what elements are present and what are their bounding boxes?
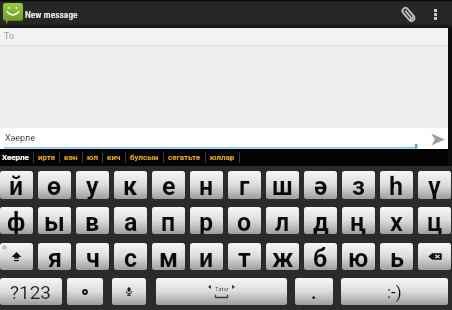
staticText: к	[123, 172, 138, 199]
button[interactable]: з	[342, 171, 375, 199]
staticText: е	[162, 172, 176, 199]
button[interactable]: ш	[266, 171, 299, 199]
button[interactable]: кич	[103, 149, 125, 166]
staticText: һ	[389, 172, 404, 199]
staticText: сәгатьтә	[168, 153, 201, 162]
staticText: кич	[107, 153, 121, 162]
button[interactable]: в	[76, 207, 109, 234]
staticText: Хәерле	[2, 153, 29, 162]
staticText: Хәерле	[5, 133, 36, 144]
button[interactable]: б	[304, 243, 337, 270]
staticText: ь	[390, 244, 404, 270]
staticText: ?123	[10, 281, 52, 303]
staticText: ф	[7, 208, 26, 234]
staticText: б	[313, 244, 328, 270]
staticText: с	[124, 244, 138, 270]
button[interactable]: ч	[76, 243, 109, 270]
staticText: р	[199, 208, 214, 234]
button[interactable]: Attach	[395, 1, 421, 27]
staticText: й	[9, 172, 24, 199]
staticText: я	[48, 244, 62, 270]
button[interactable]: д	[304, 207, 337, 234]
button[interactable]: о	[228, 207, 261, 234]
staticText: New message	[25, 9, 78, 20]
button[interactable]: а	[114, 207, 147, 234]
button[interactable]: х	[380, 207, 413, 234]
button[interactable]: ?123	[0, 278, 62, 305]
button[interactable]: ы	[38, 207, 71, 234]
button[interactable]: ө	[38, 171, 71, 199]
button[interactable]: Settings	[67, 278, 103, 305]
button[interactable]: Delete	[418, 243, 451, 270]
staticText: юл	[87, 153, 98, 162]
staticText: ө	[47, 172, 62, 199]
button[interactable]: көн	[60, 149, 82, 166]
button[interactable]: т	[228, 243, 261, 270]
staticText: ш	[272, 172, 293, 199]
button[interactable]: Shift	[0, 243, 33, 270]
button[interactable]: л	[266, 207, 299, 234]
button[interactable]: й	[0, 171, 33, 199]
button[interactable]: ф	[0, 207, 33, 234]
staticText: ю	[348, 244, 369, 270]
button[interactable]: ү	[418, 171, 451, 199]
staticText: ы	[44, 208, 65, 234]
staticText: ү	[428, 172, 441, 199]
button[interactable]: Voice input	[112, 278, 146, 305]
button[interactable]: ж	[266, 243, 299, 270]
button[interactable]: ц	[418, 207, 451, 234]
staticText: ч	[86, 244, 100, 270]
button[interactable]: :-)	[341, 278, 448, 305]
button[interactable]: н	[190, 171, 223, 199]
staticText: н	[199, 172, 214, 199]
button[interactable]: һ	[380, 171, 413, 199]
staticText: .	[311, 281, 317, 303]
button[interactable]: ь	[380, 243, 413, 270]
staticText: у	[86, 172, 99, 199]
staticText: л	[275, 208, 290, 234]
staticText: д	[313, 208, 329, 234]
button[interactable]: р	[190, 207, 223, 234]
staticText: иртә	[38, 153, 55, 162]
button[interactable]: м	[152, 243, 185, 270]
staticText: з	[352, 172, 365, 199]
button[interactable]: юл	[83, 149, 102, 166]
button[interactable]: е	[152, 171, 185, 199]
button[interactable]: Хәерле	[0, 149, 33, 166]
staticText: Tatar	[215, 285, 229, 292]
staticText: а	[124, 208, 138, 234]
button[interactable]: с	[114, 243, 147, 270]
button[interactable]: ә	[304, 171, 337, 199]
button[interactable]: ю	[342, 243, 375, 270]
staticText: ң	[350, 208, 367, 234]
button[interactable]: иртә	[34, 149, 59, 166]
button[interactable]: Navigate up	[1, 2, 24, 26]
staticText: :-)	[387, 282, 402, 302]
button[interactable]: Send	[428, 129, 448, 149]
staticText: х	[390, 208, 403, 234]
staticText: ц	[427, 208, 443, 234]
staticText: г	[239, 172, 250, 199]
staticText: ә	[314, 172, 328, 199]
button[interactable]: To	[0, 28, 452, 45]
button[interactable]: у	[76, 171, 109, 199]
button[interactable]: ң	[342, 207, 375, 234]
staticText: булсын	[130, 153, 159, 162]
button[interactable]: .	[295, 278, 333, 305]
staticText: т	[238, 244, 251, 270]
button[interactable]: сәгатьтә	[164, 149, 205, 166]
button[interactable]: к	[114, 171, 147, 199]
staticText: юллар	[210, 153, 235, 162]
button[interactable]: г	[228, 171, 261, 199]
button[interactable]: More options	[423, 2, 447, 26]
button[interactable]: юллар	[206, 149, 239, 166]
button[interactable]: я	[38, 243, 71, 270]
staticText: көн	[64, 153, 78, 162]
button[interactable]: и	[190, 243, 223, 270]
staticText: п	[161, 208, 176, 234]
button[interactable]: Space	[156, 278, 287, 305]
staticText: в	[85, 208, 100, 234]
button[interactable]: п	[152, 207, 185, 234]
staticText: ж	[272, 244, 294, 270]
button[interactable]: булсын	[126, 149, 163, 166]
